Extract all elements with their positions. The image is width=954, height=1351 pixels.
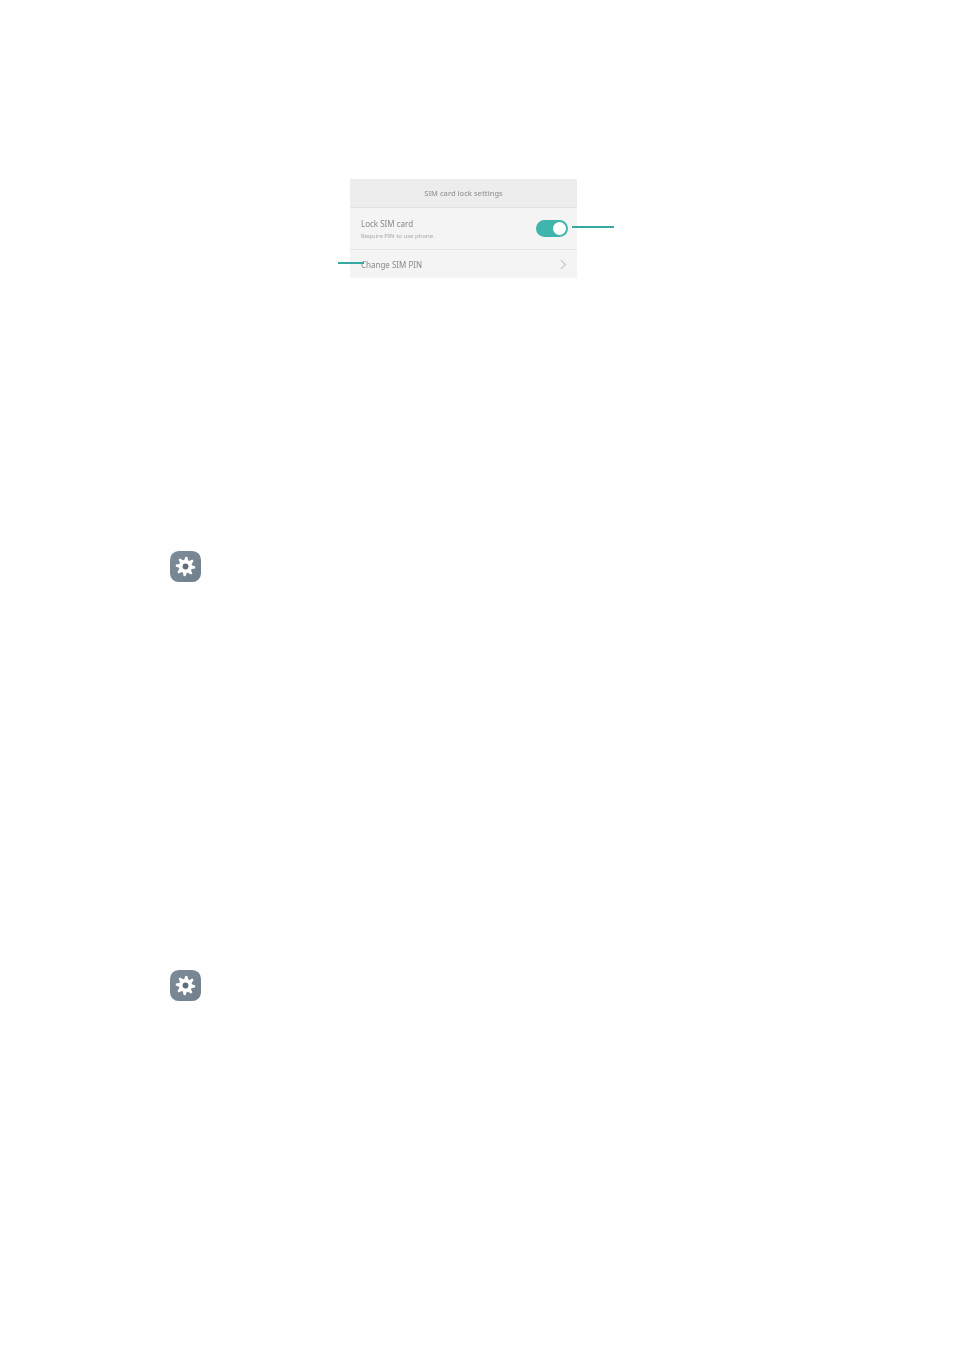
staticText: SIM card lock settings xyxy=(424,188,503,198)
button[interactable]: Change SIM PIN xyxy=(350,250,577,278)
staticText: Require PIN to use phone xyxy=(361,232,434,240)
other: Open xyxy=(559,258,567,271)
button[interactable]: Lock SIM card xyxy=(350,208,577,249)
staticText: Lock SIM card xyxy=(361,218,414,229)
button[interactable]: Lock SIM card toggle, on xyxy=(536,220,568,237)
button[interactable]: Settings xyxy=(170,551,201,582)
staticText: Change SIM PIN xyxy=(361,259,559,270)
button[interactable]: Settings xyxy=(170,970,201,1001)
